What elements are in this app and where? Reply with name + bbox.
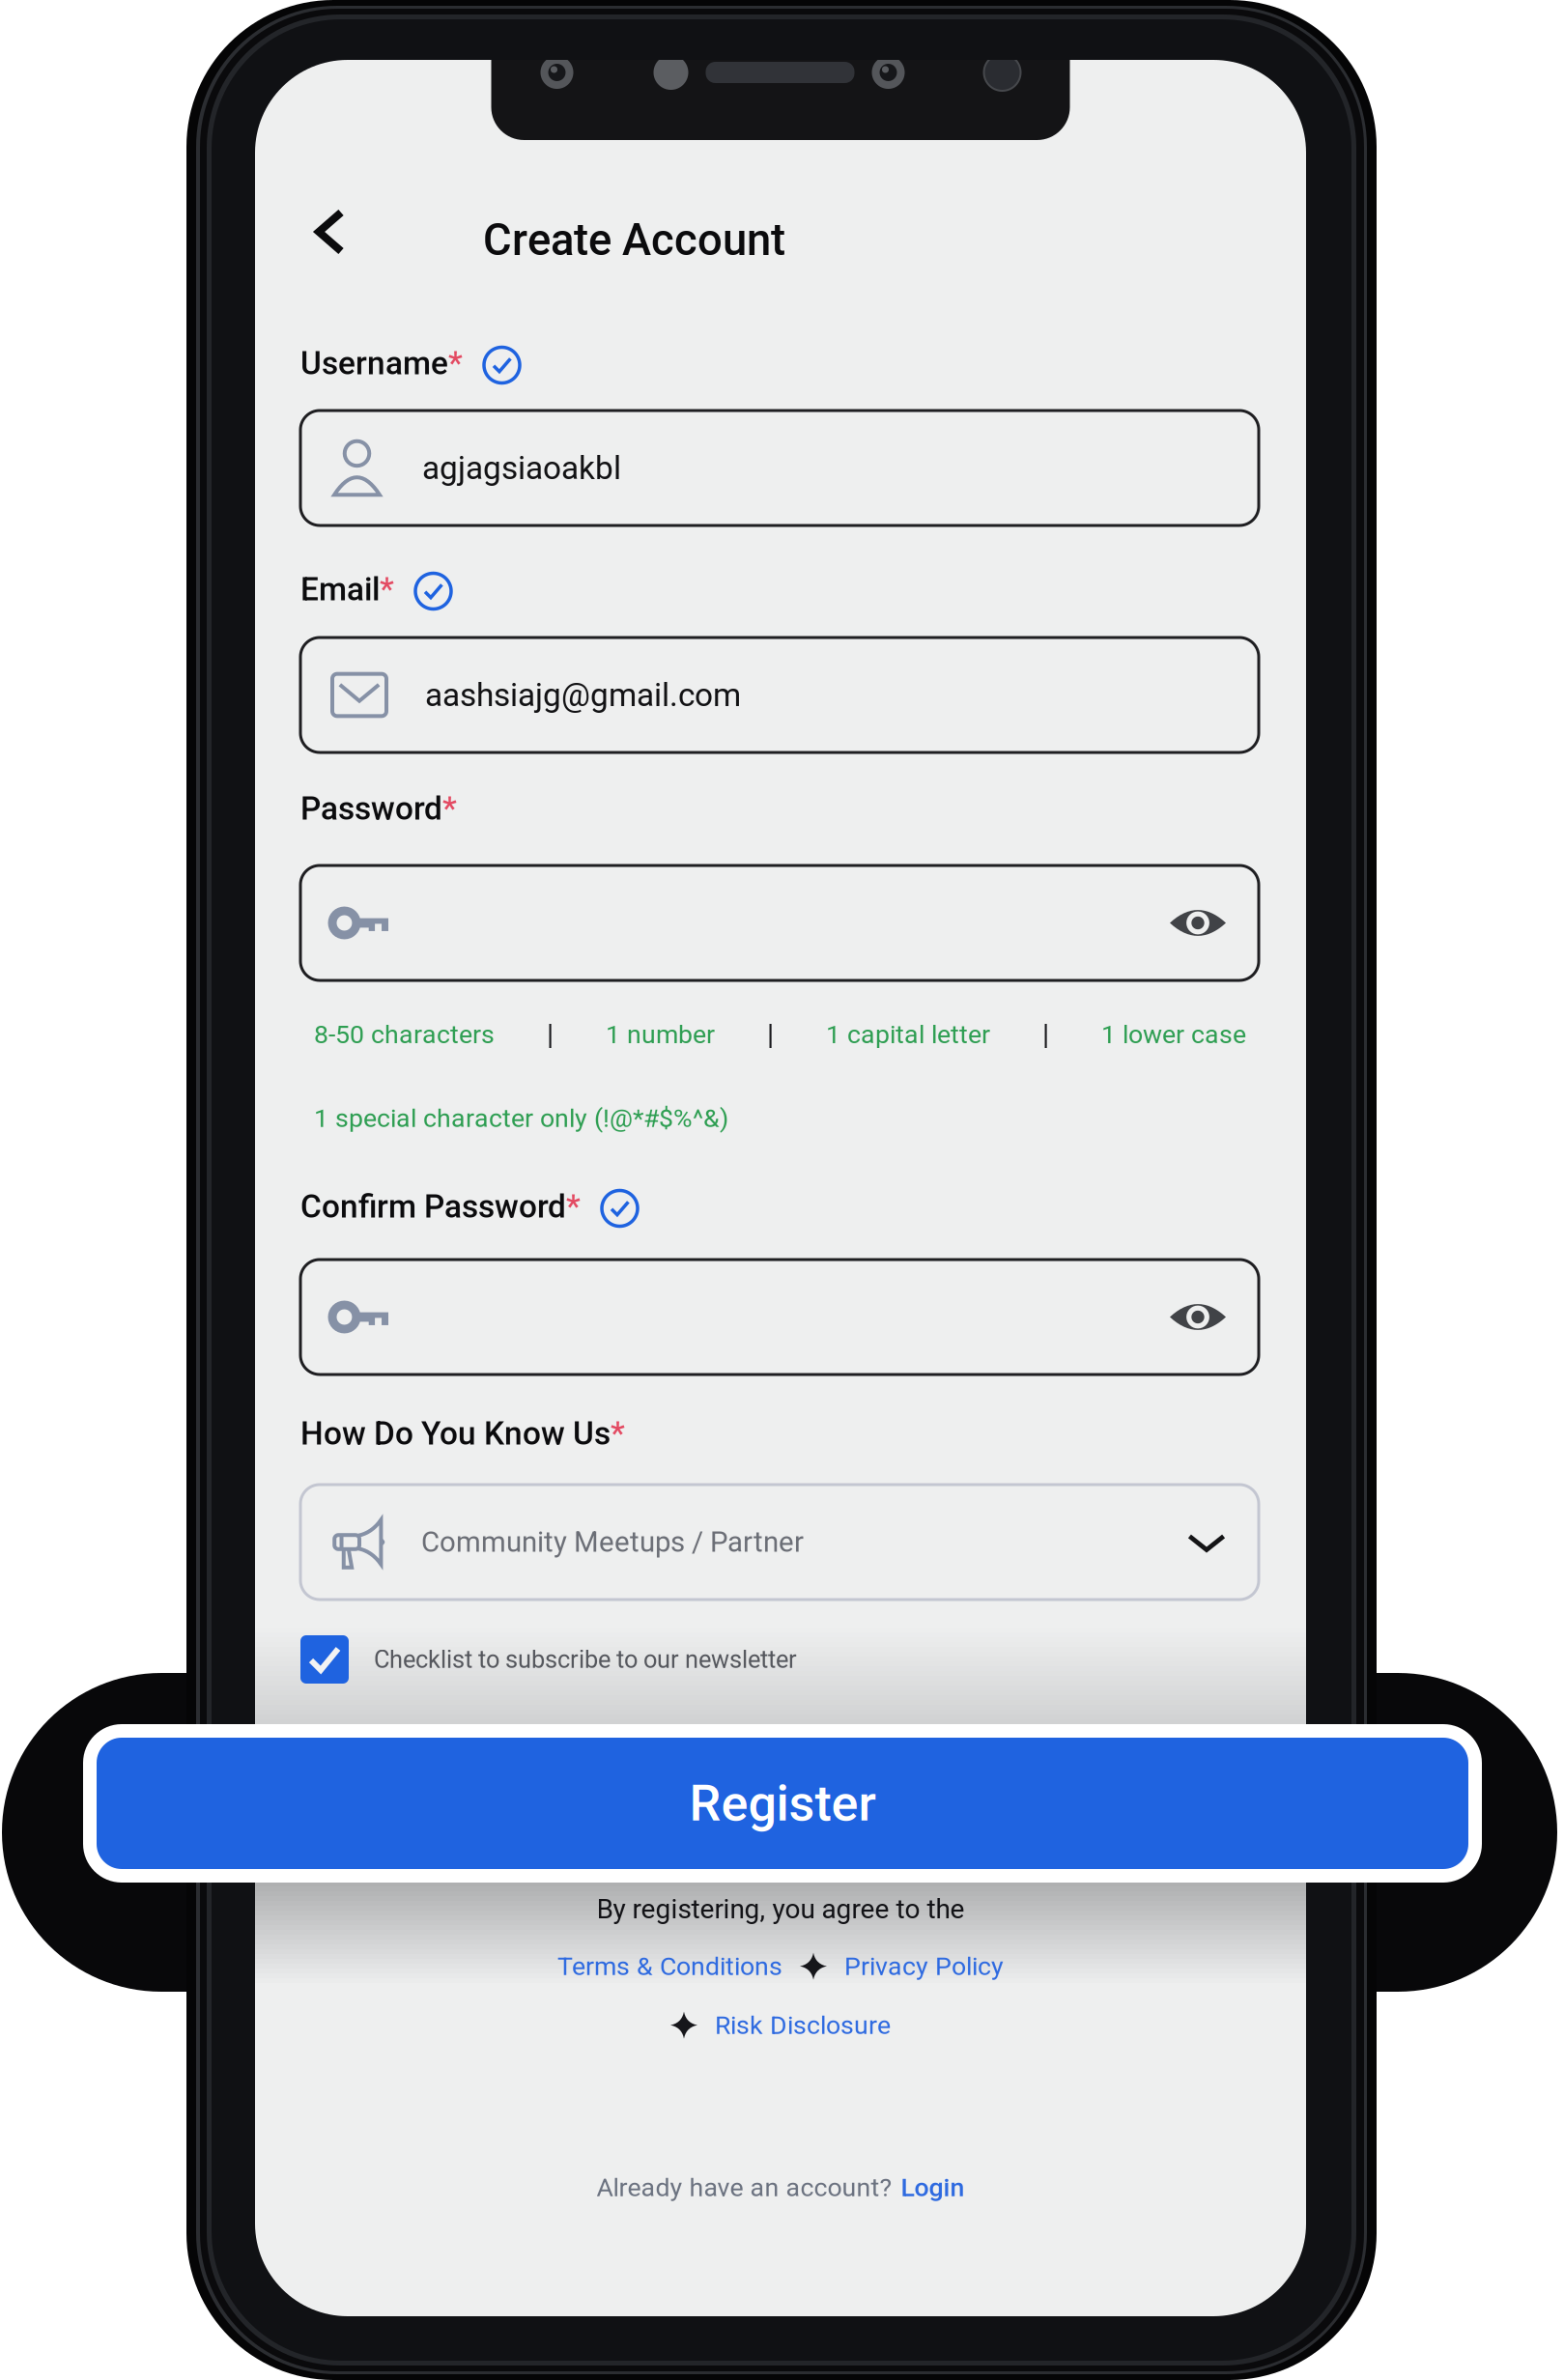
staticText: | bbox=[547, 1018, 554, 1051]
button[interactable]: Community Meetups / Partner bbox=[300, 1485, 1259, 1600]
staticText: 1 number bbox=[606, 1019, 715, 1050]
staticText: Already have an account? bbox=[597, 2172, 892, 2203]
staticText: 8-50 characters bbox=[314, 1019, 495, 1050]
button[interactable]: Checklist to subscribe to our newsletter bbox=[300, 1632, 1259, 1686]
staticText: 1 capital letter bbox=[826, 1019, 990, 1050]
button[interactable]: Login bbox=[901, 2172, 965, 2203]
staticText: | bbox=[1042, 1018, 1049, 1051]
staticText: How Do You Know Us bbox=[300, 1415, 611, 1452]
button[interactable]: Terms & Conditions bbox=[557, 1951, 782, 1981]
button[interactable]: Show confirm password bbox=[1170, 1298, 1226, 1336]
button[interactable]: Show password bbox=[1170, 904, 1226, 942]
staticText: 1 special character only (!@*#$%^&) bbox=[314, 1103, 728, 1133]
staticText: By registering, you agree to the bbox=[597, 1893, 965, 1925]
staticText: agjagsiaoakbl bbox=[422, 449, 621, 487]
staticText: Checklist to subscribe to our newsletter bbox=[374, 1645, 797, 1674]
staticText: * bbox=[611, 1415, 625, 1452]
button[interactable]: Risk Disclosure bbox=[715, 2010, 891, 2040]
staticText: * bbox=[448, 344, 463, 382]
staticText: | bbox=[767, 1018, 774, 1051]
staticText: Email bbox=[300, 570, 380, 608]
staticText: aashsiajg@gmail.com bbox=[425, 676, 741, 714]
staticText: Login bbox=[901, 2172, 965, 2203]
button[interactable]: Back bbox=[296, 189, 364, 274]
staticText: Register bbox=[689, 1774, 876, 1833]
staticText: * bbox=[442, 790, 457, 827]
staticText: Community Meetups / Partner bbox=[421, 1525, 804, 1559]
staticText: Password bbox=[300, 790, 442, 827]
staticText: Username bbox=[300, 344, 448, 382]
staticText: * bbox=[566, 1188, 581, 1225]
staticText: Create Account bbox=[483, 214, 785, 266]
button[interactable]: Privacy Policy bbox=[844, 1951, 1004, 1981]
staticText: Terms & Conditions bbox=[557, 1951, 782, 1981]
staticText: Confirm Password bbox=[300, 1188, 566, 1225]
staticText: * bbox=[380, 570, 394, 608]
staticText: 1 lower case bbox=[1101, 1019, 1246, 1050]
button[interactable]: Register bbox=[83, 1724, 1482, 1883]
staticText: Privacy Policy bbox=[844, 1951, 1004, 1981]
staticText: Risk Disclosure bbox=[715, 2010, 891, 2040]
